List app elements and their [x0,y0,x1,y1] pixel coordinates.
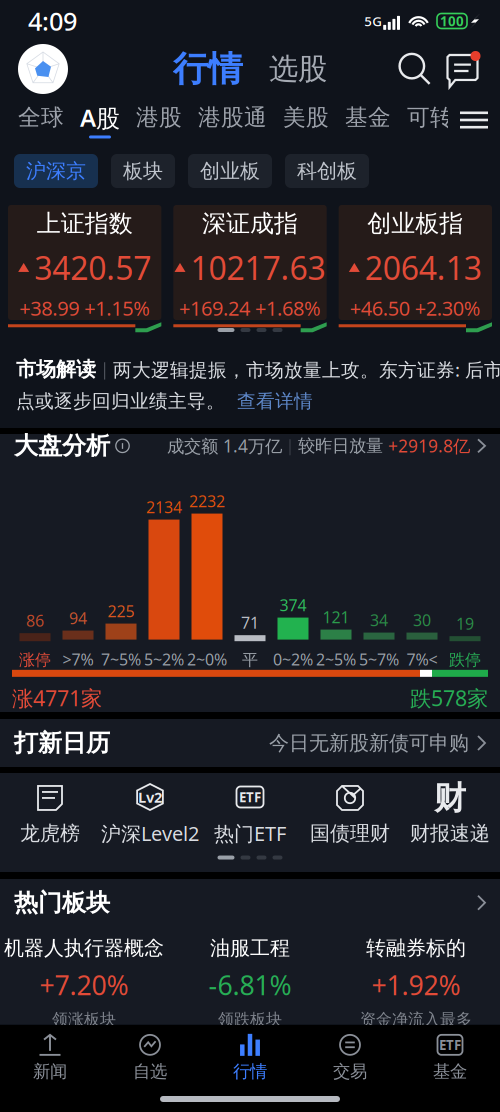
staticText: 可转 [407,104,453,131]
staticText: 科创板 [297,159,357,183]
staticText: 5~2% [144,649,184,670]
staticText: +1.92% [371,967,460,1003]
staticText: 选股 [269,51,327,87]
staticText: 86 [26,610,44,631]
button[interactable]: 龙虎榜 [0,784,100,846]
button[interactable]: 沪深京 [14,154,98,188]
staticText: +38.99 +1.15% [19,295,150,321]
button[interactable]: 创业板 [188,154,272,188]
staticText: 基金 [433,1061,467,1082]
button[interactable]: ETF [200,783,300,847]
staticText: 深证成指 [202,209,298,238]
staticText: 34 [370,609,388,630]
staticText: 油服工程 [210,936,290,960]
button[interactable]: 深证成指 [173,205,327,320]
staticText: 上证指数 [37,209,133,238]
staticText: 国债理财 [310,821,390,846]
button[interactable]: 创业板指 [339,205,492,320]
button[interactable]: 市场解读 [0,343,500,428]
staticText: 创业板 [200,159,260,183]
staticText: 打新日历 [14,728,110,758]
button[interactable]: 财 [400,784,500,846]
staticText: 3420.57 [34,246,151,289]
button[interactable]: 机器人执行器概念 [1,936,167,1029]
staticText: 资金净流入最多 [360,1010,472,1029]
staticText: 全球 [18,104,64,131]
staticText: 4:09 [28,4,77,38]
staticText: ｜ [282,436,298,456]
staticText: 5G [364,12,382,30]
button[interactable]: 行情 [173,48,243,90]
staticText: 行情 [233,1061,267,1082]
button[interactable]: A股 [72,101,128,138]
button[interactable]: All markets [448,96,500,144]
staticText: >7% [62,649,93,670]
button[interactable]: Profile [18,44,68,94]
staticText: 创业板指 [367,209,463,238]
staticText: 2~0% [187,649,227,670]
staticText: 平 [242,650,258,670]
staticText: 领跌板块 [218,1010,282,1029]
staticText: 7~5% [101,649,141,670]
staticText: 转融券标的 [366,936,466,960]
button[interactable]: 转融券标的 [333,936,499,1029]
staticText: 121 [322,606,349,627]
staticText: 成交额 1.4万亿 [167,434,282,457]
staticText: 财报速递 [410,821,490,846]
staticText: 2~5% [316,649,356,670]
staticText: A股 [80,101,120,133]
staticText: Lv2 [138,787,162,807]
staticText: 跌停 [449,650,481,670]
staticText: 2134 [146,496,182,517]
staticText: 港股 [136,104,182,131]
staticText: ｜ [96,359,113,380]
button[interactable]: 港股通 [190,104,275,136]
button[interactable]: 可转 [399,104,461,136]
staticText: 沪深Level2 [101,820,199,847]
button[interactable]: 油服工程 [167,936,333,1029]
staticText: 94 [69,607,87,628]
staticText: 热门板块 [14,888,110,917]
staticText: 374 [279,594,306,615]
button[interactable]: 基金 [337,104,399,136]
staticText: +169.24 +1.68% [179,295,321,321]
staticText: 龙虎榜 [20,821,80,846]
button[interactable]: ETF [400,1034,500,1082]
staticText: 涨停 [19,650,51,670]
button[interactable]: 行情 [200,1034,300,1082]
staticText: 基金 [345,104,391,131]
button[interactable]: Search [396,51,432,87]
button[interactable]: 自选 [100,1034,200,1082]
staticText: 港股通 [198,104,267,131]
staticText: ETF [239,788,261,806]
staticText: 沪深京 [26,159,86,183]
button[interactable]: Lv2 [100,783,200,847]
staticText: +2919.8亿 [383,434,470,457]
staticText: -6.81% [208,967,291,1003]
staticText: 较昨日放量 [298,435,383,456]
button[interactable]: 上证指数 [8,205,161,320]
button[interactable]: 新闻 [0,1034,100,1082]
button[interactable]: 热门板块 [0,874,500,932]
button[interactable]: 交易 [300,1034,400,1082]
staticText: 2064.13 [365,246,482,289]
button[interactable]: 板块 [111,154,175,188]
button[interactable]: 科创板 [285,154,369,188]
button[interactable]: 国债理财 [300,784,400,846]
staticText: 热门ETF [214,820,286,847]
staticText: 交易 [333,1061,367,1082]
staticText: 0~2% [273,649,313,670]
staticText: 225 [107,600,134,621]
staticText: 5~7% [359,649,399,670]
button[interactable]: 美股 [275,104,337,136]
button[interactable]: 港股 [128,104,190,136]
button[interactable]: 打新日历 [0,719,500,767]
button[interactable]: 全球 [10,104,72,136]
staticText: 财 [434,778,466,818]
staticText: 今日无新股新债可申购 [269,731,469,755]
button[interactable]: Messages [446,50,482,88]
staticText: 两大逻辑提振，市场放量上攻。东方证券: 后市焦 [113,357,500,382]
button[interactable]: 大盘分析 [0,422,500,470]
button[interactable]: 选股 [243,51,327,87]
staticText: 2232 [189,490,225,511]
